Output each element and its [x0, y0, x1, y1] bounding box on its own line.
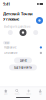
staticText: Ещё варианты [14, 66, 32, 69]
button[interactable]: Account [36, 11, 43, 24]
staticText: Выберите действие [4, 25, 30, 28]
staticText: Детский Точки [3, 11, 33, 16]
button[interactable]: Дом [0, 89, 11, 95]
button[interactable]: Ещё варианты [9, 64, 37, 70]
staticText: Описание [4, 51, 17, 55]
button[interactable]: Новое [23, 89, 34, 95]
button[interactable]: Далее [14, 57, 32, 63]
staticText: Название [4, 46, 16, 49]
staticText: Поиск [15, 93, 20, 95]
button[interactable]: Поиск [11, 89, 23, 95]
button[interactable]: Все [3, 41, 10, 44]
button[interactable]: Чат [29, 30, 42, 35]
staticText: 9:41 [3, 1, 10, 7]
staticText: Далее [19, 59, 26, 62]
button[interactable]: Ещё [34, 89, 46, 95]
staticText: Ещё [39, 93, 42, 95]
staticText: Дом [4, 93, 7, 95]
button[interactable]: Лента [4, 30, 17, 35]
staticText: Все [5, 41, 9, 44]
staticText: Угловые [3, 16, 19, 22]
button[interactable]: Описание [4, 51, 42, 55]
button[interactable]: Запись [17, 29, 29, 36]
button[interactable]: Название [4, 45, 42, 49]
